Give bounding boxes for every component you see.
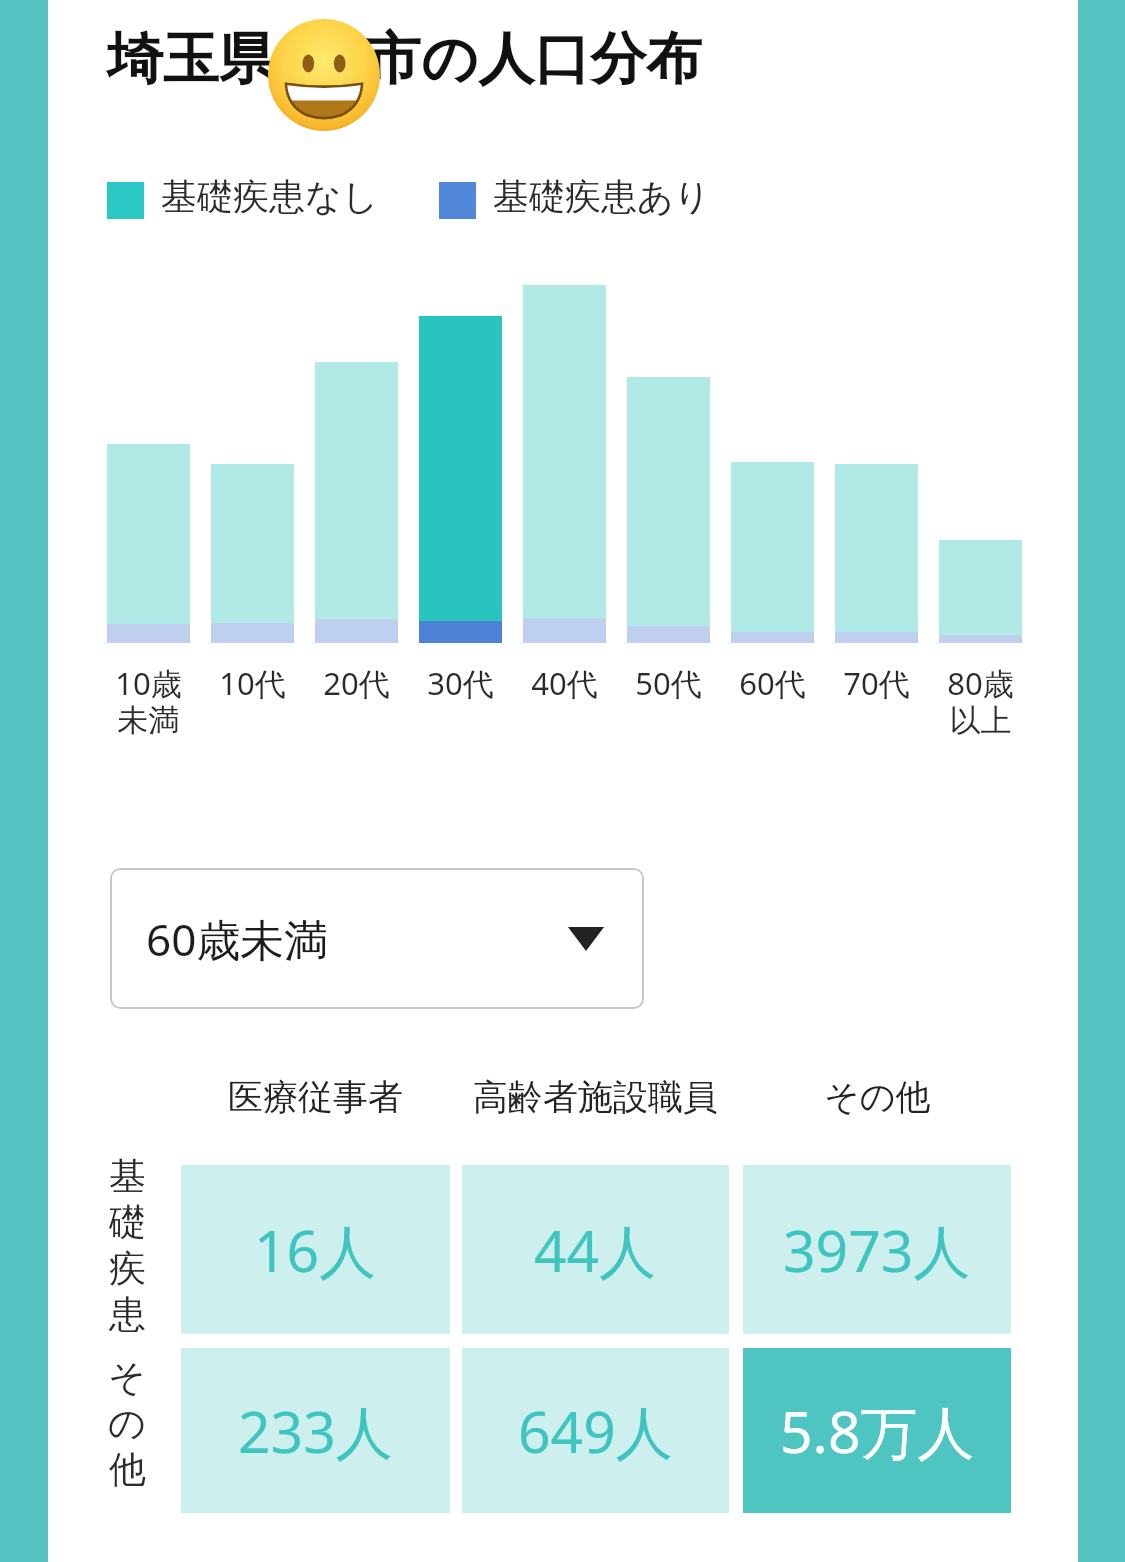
staticText: 60歳未満 (146, 909, 329, 969)
button[interactable]: 44人 (462, 1165, 729, 1334)
button[interactable]: 5.8万人 (743, 1348, 1011, 1513)
staticText: 高齢者施設職員 (473, 1075, 718, 1119)
staticText: 他 (109, 1446, 146, 1493)
staticText: 16人 (254, 1211, 377, 1289)
staticText: 医療従事者 (228, 1075, 403, 1119)
button[interactable]: 60歳未満 (110, 868, 644, 1009)
staticText: 80歳 以上 (947, 662, 1014, 740)
staticText: 40代 (531, 662, 598, 704)
staticText: の (108, 1400, 146, 1447)
staticText: 基礎疾患あり (493, 174, 711, 219)
staticText: 基 (109, 1153, 146, 1200)
staticText: 市の人口分布 (365, 24, 703, 95)
staticText: 疾 (109, 1245, 146, 1292)
staticText: 649人 (518, 1392, 673, 1470)
button[interactable]: 649人 (462, 1348, 729, 1513)
staticText: 3973人 (783, 1211, 971, 1289)
staticText: 30代 (427, 662, 494, 704)
staticText: 233人 (238, 1392, 393, 1470)
staticText: そ (108, 1354, 146, 1401)
staticText: 10代 (219, 662, 286, 704)
staticText: 60代 (739, 662, 806, 704)
staticText: 患 (109, 1291, 146, 1338)
staticText: 基礎疾患なし (161, 174, 379, 219)
button[interactable]: 3973人 (743, 1165, 1011, 1334)
staticText: 5.8万人 (780, 1392, 975, 1470)
staticText: 70代 (843, 662, 910, 704)
staticText: 44人 (534, 1211, 657, 1289)
staticText: 20代 (323, 662, 390, 704)
button[interactable]: 233人 (181, 1348, 450, 1513)
staticText: 50代 (635, 662, 702, 704)
staticText: 10歳 未満 (115, 662, 182, 740)
staticText: 礎 (109, 1199, 146, 1246)
button[interactable]: 16人 (181, 1165, 450, 1334)
staticText: 埼玉県 (107, 24, 275, 95)
staticText: その他 (824, 1075, 931, 1119)
